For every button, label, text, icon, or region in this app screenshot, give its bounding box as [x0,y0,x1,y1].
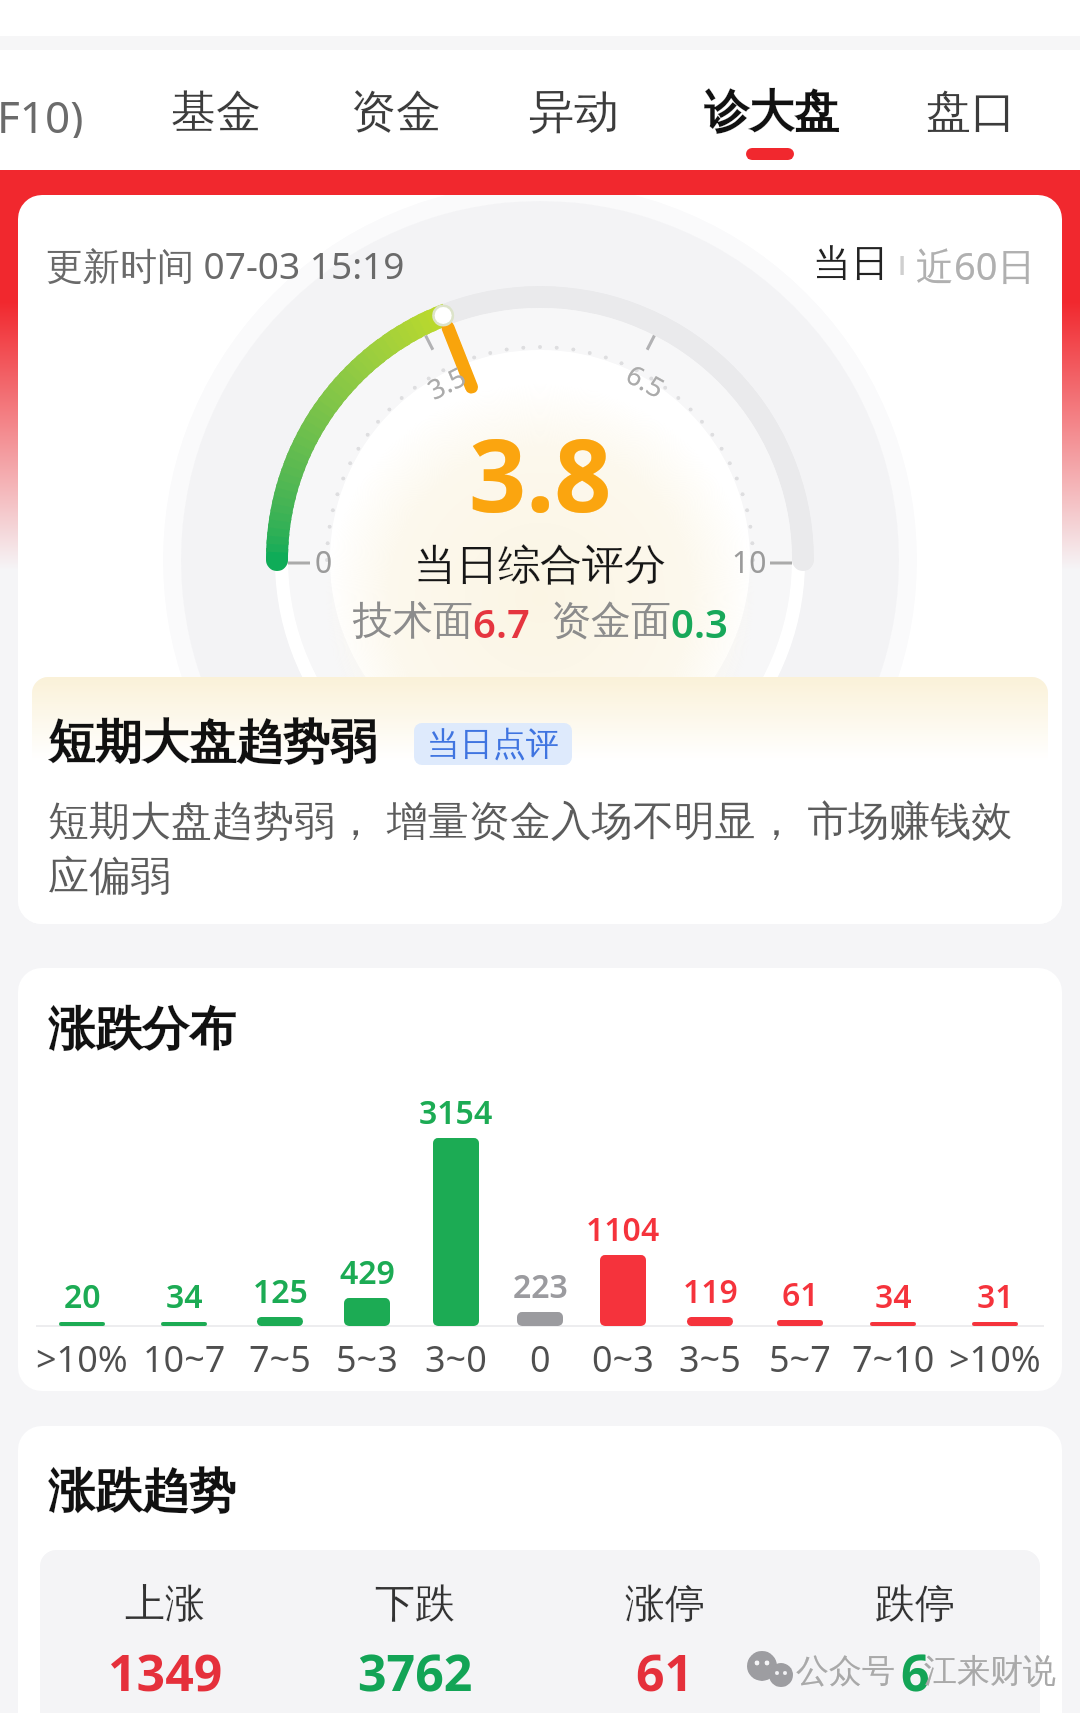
staticText: 6 [901,1638,930,1698]
staticText: 20 [64,1274,101,1314]
staticText: 3~5 [679,1334,741,1376]
button[interactable]: 异动 [528,80,620,144]
staticText: 10~7 [143,1334,226,1376]
staticText: 涨跌趋势 [48,1462,236,1518]
staticText: >10% [36,1334,128,1376]
staticText: 0 [530,1334,551,1376]
button[interactable] [55,1566,275,1713]
button[interactable]: 基金 [170,80,262,144]
staticText: 上涨 [125,1578,205,1624]
button[interactable]: 当日 [658,239,1036,285]
staticText: 0.3 [671,595,728,645]
staticText: 跌停 [875,1578,955,1624]
staticText: 盘口 [926,84,1016,141]
staticText: 资金面 [551,595,671,645]
staticText: 61 [636,1638,694,1698]
staticText: 31 [977,1274,1014,1314]
staticText: 34 [166,1274,203,1314]
staticText: 当日 [813,239,889,285]
staticText: 3.5 [421,357,472,408]
staticText: 技术面 [353,595,473,645]
button[interactable] [805,1566,1025,1713]
staticText: 资金 [351,84,441,141]
staticText: 0 [315,541,333,581]
staticText: 429 [340,1250,395,1290]
button[interactable]: 诊大盘 [702,80,840,144]
staticText: 61 [782,1272,819,1312]
staticText: 当日综合评分 [414,539,666,589]
staticText: 短期大盘趋势弱， 增量资金入场不明显， 市场赚钱效 [48,791,1013,843]
staticText: 异动 [529,84,619,141]
staticText: 涨停 [625,1578,705,1624]
staticText: 119 [683,1269,738,1309]
staticText: 6.5 [620,355,672,406]
staticText: 3154 [419,1090,493,1130]
staticText: 基金 [171,84,261,141]
button[interactable]: 资金 [350,80,442,144]
staticText: 7~10 [852,1334,935,1376]
staticText: 1104 [586,1207,660,1247]
staticText: 近60日 [916,239,1036,285]
staticText: 3762 [358,1638,473,1698]
staticText: 34 [875,1274,912,1314]
staticText: 223 [513,1264,568,1304]
staticText: 短期大盘趋势弱 [48,713,377,767]
staticText: 125 [253,1269,308,1309]
button[interactable]: 当日点评 [414,723,572,765]
staticText: ı [889,239,916,285]
staticText: 更新时间 07-03 15:19 [46,239,405,285]
staticText: 江来财说 [924,1650,1056,1692]
staticText: 涨跌分布 [48,1000,236,1056]
staticText: 当日点评 [427,723,559,765]
button[interactable]: 盘口 [925,80,1017,144]
staticText: 5~7 [769,1334,831,1376]
staticText: >10% [949,1334,1041,1376]
staticText: 3~0 [425,1334,487,1376]
staticText: 公众号 [796,1650,895,1692]
staticText: 诊大盘 [704,84,839,141]
staticText: 6.7 [473,595,530,645]
staticText: 7~5 [249,1334,311,1376]
staticText: 下跌 [375,1578,455,1624]
staticText: 0~3 [592,1334,654,1376]
staticText: 5~3 [336,1334,398,1376]
staticText: 3.8 [469,405,612,529]
button[interactable] [305,1566,525,1713]
staticText: F10) [0,86,84,138]
staticText: 10 [732,541,767,581]
button[interactable] [555,1566,775,1713]
staticText: 1349 [108,1638,223,1698]
staticText: 应偏弱 [48,851,171,903]
